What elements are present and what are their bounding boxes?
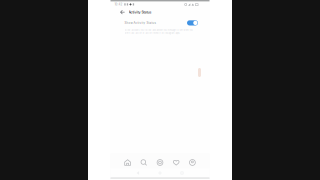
- button[interactable]: Reels: [152, 156, 168, 168]
- staticText: Show Activity Status: [124, 21, 155, 25]
- staticText: Allow accounts you follow and anyone you…: [124, 29, 192, 35]
- staticText: 10:42: [114, 3, 122, 6]
- button[interactable]: Activity: [168, 156, 184, 168]
- button[interactable]: Home: [119, 156, 136, 168]
- button[interactable]: Search: [136, 156, 152, 168]
- staticText: Activity Status: [129, 10, 152, 14]
- button[interactable]: Back: [118, 8, 127, 17]
- button[interactable]: Profile: [184, 156, 200, 168]
- button[interactable]: Show Activity Status: [110, 17, 209, 29]
